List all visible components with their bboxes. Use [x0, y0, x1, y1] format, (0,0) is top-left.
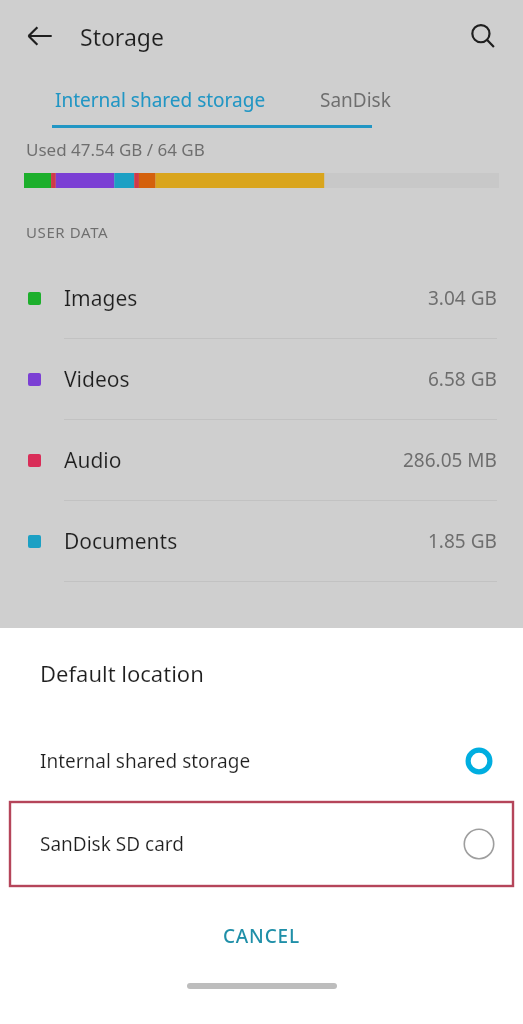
button[interactable]: Documents — [0, 501, 523, 581]
button[interactable]: Videos — [0, 339, 523, 419]
staticText: SanDisk — [320, 87, 391, 113]
staticText: SanDisk SD card — [40, 831, 184, 857]
staticText: 6.58 GB — [428, 366, 497, 392]
button[interactable]: SanDisk SD card — [10, 802, 513, 886]
staticText: 286.05 MB — [403, 447, 497, 473]
button[interactable]: Internal shared storage — [0, 730, 523, 792]
button[interactable]: SanDisk — [320, 72, 523, 128]
button[interactable]: CANCEL — [0, 908, 523, 964]
staticText: Used 47.54 GB / 64 GB — [26, 138, 205, 161]
staticText: Videos — [64, 365, 130, 394]
button[interactable]: Internal shared storage — [0, 72, 320, 128]
button[interactable]: Back — [16, 12, 64, 60]
staticText: CANCEL — [223, 923, 300, 949]
staticText: 1.85 GB — [428, 528, 497, 554]
button[interactable]: Audio — [0, 420, 523, 500]
staticText: Audio — [64, 446, 122, 475]
staticText: 3.04 GB — [428, 285, 497, 311]
button[interactable]: Search — [459, 12, 507, 60]
staticText: Storage — [80, 21, 164, 52]
staticText: Internal shared storage — [55, 87, 266, 113]
staticText: USER DATA — [26, 222, 109, 242]
staticText: Internal shared storage — [40, 748, 251, 774]
button[interactable]: Images — [0, 258, 523, 338]
staticText: Images — [64, 284, 138, 313]
staticText: Documents — [64, 527, 178, 556]
staticText: Default location — [40, 658, 204, 688]
